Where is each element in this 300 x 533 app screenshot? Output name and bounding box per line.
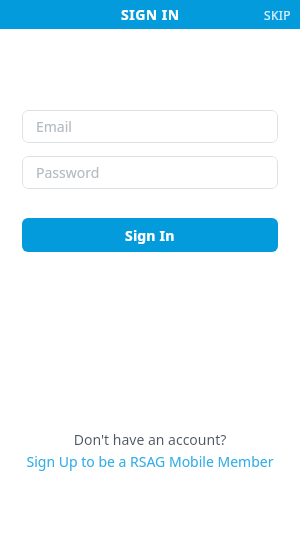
staticText: SKIP: [264, 7, 291, 23]
staticText: Don't have an account?: [0, 430, 300, 449]
staticText: Sign In: [125, 226, 175, 245]
button[interactable]: Password: [22, 156, 278, 189]
button[interactable]: Email: [22, 110, 278, 143]
button[interactable]: Sign Up to be a RSAG Mobile Member: [0, 452, 300, 471]
button[interactable]: SIGN IN: [115, 3, 186, 26]
button[interactable]: Sign In: [22, 218, 278, 252]
staticText: SIGN IN: [121, 5, 180, 24]
staticText: Email: [36, 117, 72, 136]
button[interactable]: SKIP: [255, 2, 300, 28]
staticText: Password: [36, 163, 100, 182]
staticText: Sign Up to be a RSAG Mobile Member: [0, 452, 300, 471]
